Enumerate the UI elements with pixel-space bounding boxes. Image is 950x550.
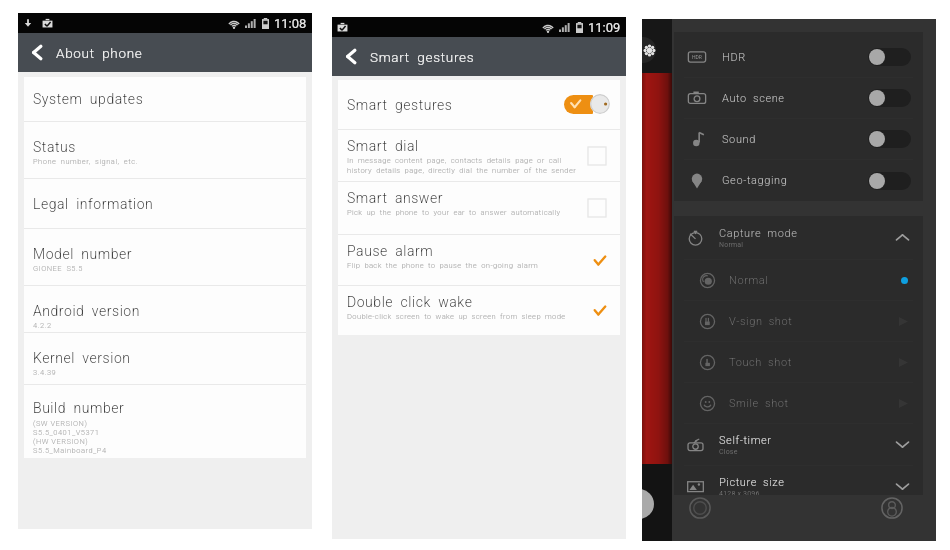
staticText: Normal [719,241,744,249]
staticText: Geo-tagging [722,174,788,187]
button[interactable]: Back [18,33,56,72]
button[interactable]: Geo-tagging [674,160,923,201]
button[interactable]: Kernel version [24,333,306,385]
staticText: HDR [722,51,746,64]
staticText: Self-timer [719,434,772,447]
staticText: Picture size [719,476,785,489]
button[interactable]: System updates [24,77,306,122]
staticText: Status [33,139,76,155]
staticText: Capture mode [719,227,798,240]
staticText: 3.4.39 [33,368,57,377]
button[interactable]: Shutter [642,489,654,519]
staticText: Double click wake [347,294,473,310]
staticText: Normal [729,274,769,287]
staticText: Flip back the phone to pause the on-goin… [347,261,539,270]
staticText: Legal information [33,196,154,212]
button[interactable]: Capture mode [674,216,923,260]
button[interactable]: Status [24,122,306,179]
button[interactable]: Model number [24,229,306,286]
staticText: Smart gestures [370,49,475,65]
button[interactable]: Build number [24,385,306,458]
button[interactable]: Smart answer [338,182,620,235]
staticText: Auto scene [722,92,785,105]
staticText: Build number [33,400,125,416]
staticText: Smile shot [729,397,789,410]
button[interactable]: Back [332,37,370,76]
button[interactable]: Legal information [24,179,306,229]
button[interactable]: Pause alarm [338,235,620,286]
button[interactable]: Android version [24,286,306,333]
staticText: Smart answer [347,190,443,206]
staticText: 4.2.2 [33,321,52,330]
staticText: In message content page, contacts detail… [347,156,562,175]
staticText: (HW VERSION) [33,437,89,446]
staticText: Pause alarm [347,243,434,259]
button[interactable]: Smart gestures [338,80,620,130]
staticText: Touch shot [729,356,792,369]
staticText: 11:09 [588,20,621,35]
button[interactable]: Smile shot [674,383,923,424]
staticText: 4128 x 3096 [719,490,760,498]
button[interactable]: V-sign shot [674,301,923,342]
button[interactable]: Picture size [674,466,923,508]
button[interactable]: More options [880,496,904,520]
button[interactable]: Smart dial [338,130,620,182]
button[interactable]: HDR [674,37,923,78]
button[interactable]: Gallery [688,496,712,520]
button[interactable]: Normal [674,260,923,301]
staticText: Android version [33,303,140,319]
staticText: Kernel version [33,350,131,366]
staticText: Pick up the phone to your ear to answer … [347,208,561,217]
staticText: S5.5_Mainboard_P4 [33,446,107,455]
staticText: HDR [692,54,702,60]
staticText: Model number [33,246,133,262]
staticText: System updates [33,91,144,107]
button[interactable]: Double click wake [338,286,620,335]
staticText: (SW VERSION) [33,419,88,428]
button[interactable]: Auto scene [674,78,923,119]
staticText: Close [719,448,738,456]
staticText: Sound [722,133,756,146]
staticText: V-sign shot [729,315,793,328]
staticText: 11:08 [274,16,307,31]
button[interactable]: Touch shot [674,342,923,383]
button[interactable]: Sound [674,119,923,160]
button[interactable]: Settings [642,37,656,63]
staticText: S5.5_0401_V5371 [33,428,100,437]
staticText: About phone [56,45,143,61]
staticText: Smart gestures [347,97,453,113]
staticText: GIONEE S5.5 [33,264,83,273]
button[interactable]: Self-timer [674,424,923,466]
staticText: Phone number, signal, etc. [33,157,138,166]
staticText: Smart dial [347,138,419,154]
staticText: Double-click screen to wake up screen fr… [347,312,562,321]
